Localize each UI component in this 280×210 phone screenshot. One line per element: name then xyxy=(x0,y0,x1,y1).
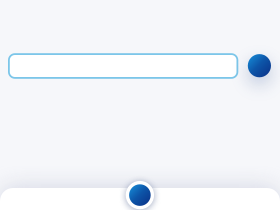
button[interactable]: Search xyxy=(248,54,271,77)
button[interactable] xyxy=(9,54,237,78)
button[interactable]: Record xyxy=(126,181,154,209)
